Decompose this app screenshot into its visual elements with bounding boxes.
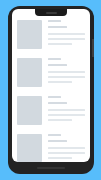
button[interactable]	[17, 20, 85, 49]
button[interactable]	[17, 96, 85, 125]
button[interactable]	[17, 134, 85, 162]
button[interactable]	[17, 58, 85, 87]
